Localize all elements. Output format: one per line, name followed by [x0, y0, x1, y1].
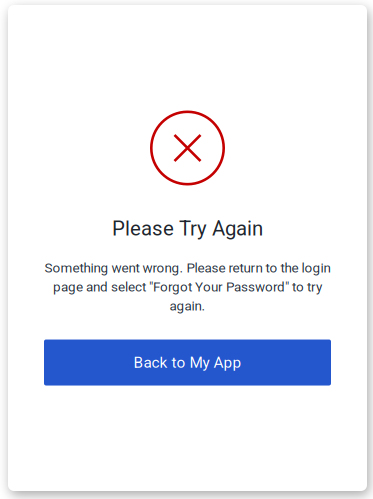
staticText: page and select "Forgot Your Password" t… — [53, 279, 322, 295]
staticText: Something went wrong. Please return to t… — [44, 260, 330, 276]
staticText: Please Try Again — [112, 216, 263, 240]
button[interactable]: Back to My App — [44, 339, 331, 385]
staticText: Back to My App — [133, 353, 241, 371]
staticText: again. — [169, 298, 205, 314]
